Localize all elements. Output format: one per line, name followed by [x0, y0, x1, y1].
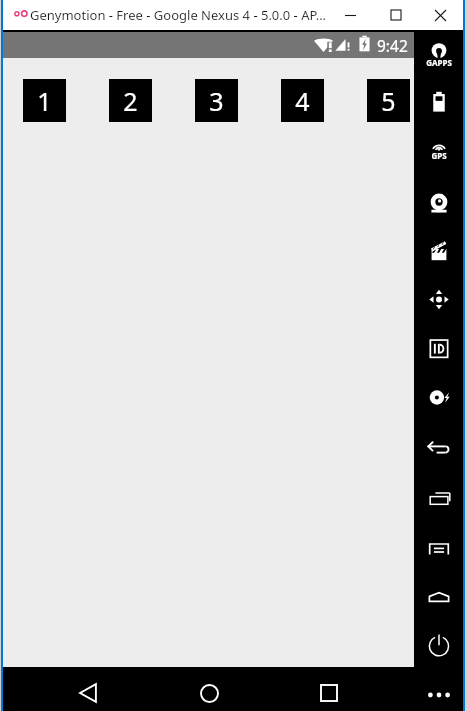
staticText: 1	[37, 84, 52, 118]
button[interactable]: GPS	[414, 124, 463, 172]
staticText: 9:42	[377, 35, 408, 56]
button[interactable]: 1	[23, 79, 66, 122]
button[interactable]: Recent apps	[286, 671, 372, 711]
button[interactable]: Close	[418, 0, 463, 30]
staticText: 2	[123, 84, 138, 118]
button[interactable]: Home	[166, 671, 252, 711]
button[interactable]: Back	[414, 425, 463, 473]
staticText: Genymotion - Free - Google Nexus 4 - 5.0…	[30, 6, 327, 24]
button[interactable]: Minimize	[328, 0, 373, 30]
button[interactable]: Screen recorder	[414, 225, 463, 273]
staticText: GAPPS	[426, 57, 452, 68]
button[interactable]: 3	[195, 79, 238, 122]
button[interactable]: Menu	[414, 526, 463, 574]
staticText: 5	[381, 84, 396, 118]
button[interactable]: Home	[414, 573, 463, 621]
button[interactable]: Power	[414, 622, 463, 670]
staticText: 4	[295, 84, 310, 118]
button[interactable]: 4	[281, 79, 324, 122]
button[interactable]: Recent apps	[414, 475, 463, 523]
button[interactable]: Maximize	[373, 0, 418, 30]
button[interactable]: 5	[367, 79, 410, 122]
staticText: GPS	[431, 150, 447, 161]
button[interactable]: Back	[45, 671, 131, 711]
staticText: 3	[209, 84, 224, 118]
button[interactable]: Identifiers	[414, 325, 463, 373]
button[interactable]: More	[414, 671, 463, 711]
button[interactable]: Disk IO	[414, 374, 463, 422]
button[interactable]: Camera	[414, 180, 463, 228]
button[interactable]: GApps	[414, 30, 463, 78]
button[interactable]: Battery	[414, 78, 463, 126]
button[interactable]: 2	[109, 79, 152, 122]
button[interactable]: Rotate	[414, 276, 463, 324]
